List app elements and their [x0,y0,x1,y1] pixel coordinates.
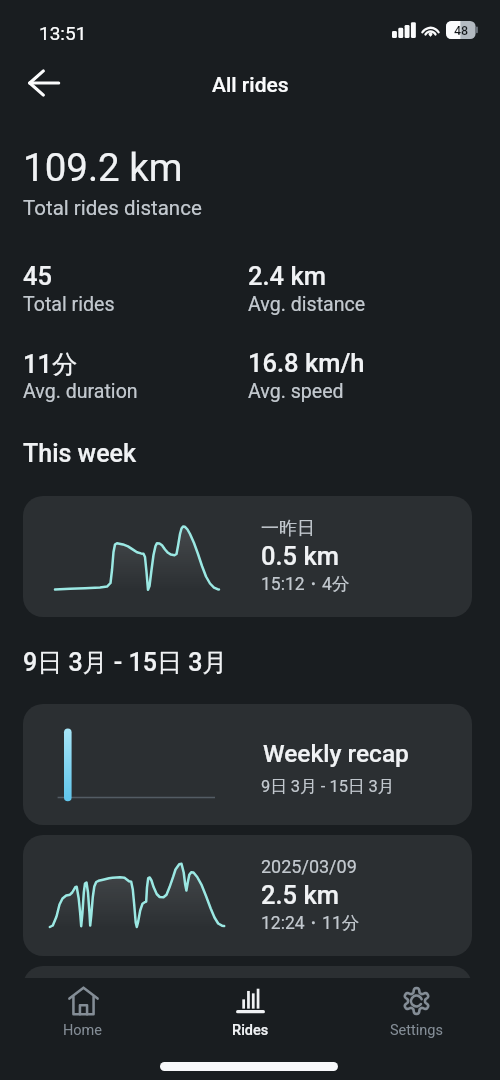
staticText: 9日 3月 - 15日 3月 [261,776,395,797]
button[interactable]: Weekly recap [23,704,472,825]
staticText: 2.4 km [248,261,326,291]
button[interactable]: Back [20,59,67,106]
staticText: 9日 3月 - 15日 3月 [23,647,228,678]
button[interactable]: 一昨日 [23,496,472,617]
staticText: 109.2 km [23,145,183,190]
staticText: Total rides distance [23,196,202,220]
staticText: 一昨日 [261,517,315,540]
staticText: Rides [232,1022,269,1039]
staticText: 2025/03/09 [261,856,357,877]
staticText: 11分 [23,348,78,380]
staticText: 48 [454,23,469,38]
staticText: Avg. speed [248,380,344,403]
staticText: 45 [23,261,52,291]
staticText: Avg. distance [248,293,366,316]
staticText: 12:24・11分 [261,912,360,934]
staticText: 0.5 km [261,541,339,571]
staticText: Weekly recap [263,739,409,768]
button[interactable]: Rides [194,980,306,1042]
staticText: This week [23,439,136,468]
button[interactable]: Home [27,980,139,1042]
staticText: Avg. duration [23,380,138,403]
staticText: Home [63,1022,103,1039]
staticText: 15:12・4分 [261,573,350,595]
staticText: Total rides [23,293,115,316]
staticText: 13:51 [39,22,87,44]
staticText: 2.5 km [261,880,339,910]
button[interactable]: Settings [360,980,472,1042]
button[interactable] [23,966,472,1080]
staticText: 16.8 km/h [248,348,365,378]
staticText: All rides [212,73,289,98]
button[interactable]: 2025/03/09 [23,835,472,956]
staticText: Settings [390,1022,443,1039]
